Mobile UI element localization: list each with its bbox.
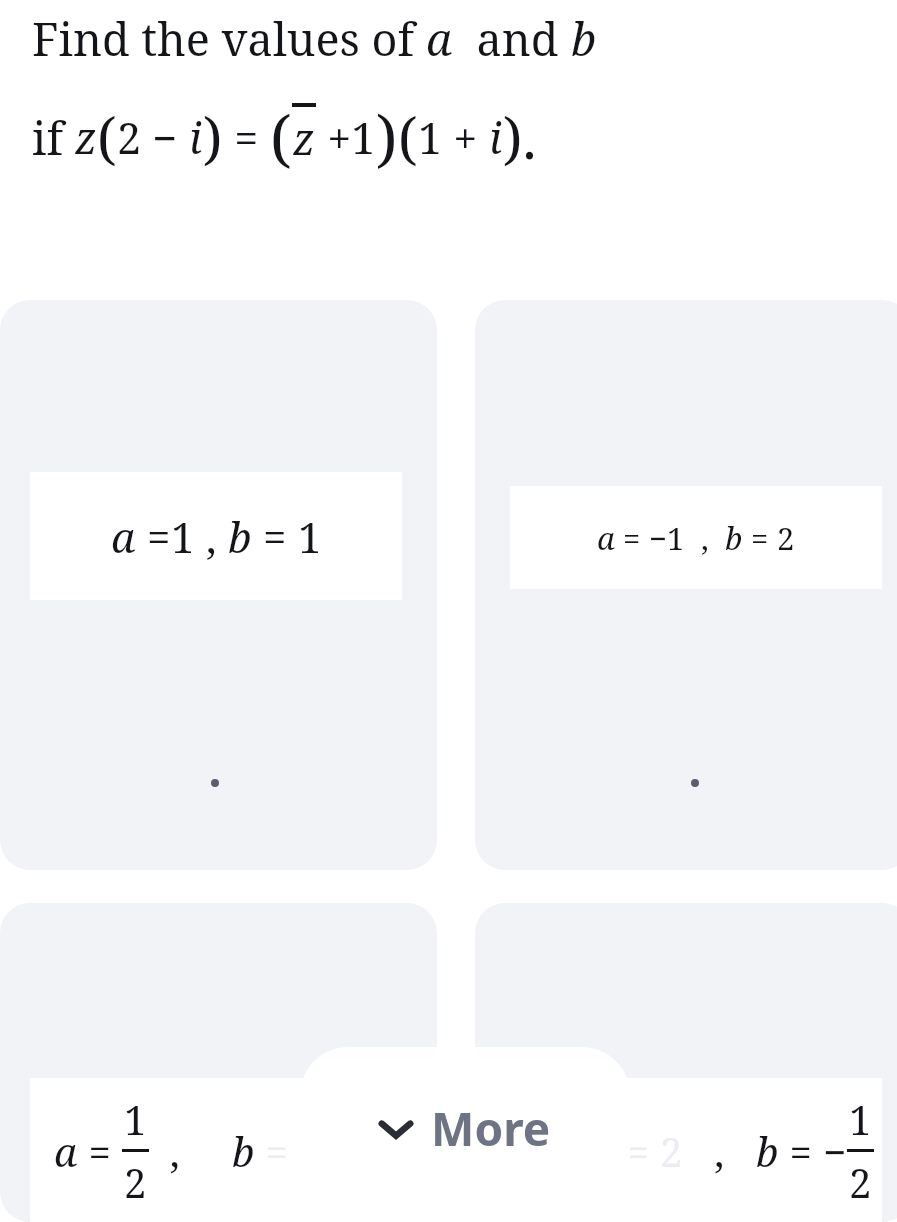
- staticText: +1: [316, 108, 376, 167]
- staticText: =: [616, 1124, 660, 1178]
- staticText: −: [823, 1124, 847, 1178]
- staticText: =: [255, 1124, 299, 1178]
- staticText: More: [431, 1097, 551, 1160]
- staticText: (: [97, 99, 117, 175]
- staticText: if: [32, 107, 75, 168]
- staticText: a: [597, 517, 615, 559]
- staticText: =: [78, 1124, 122, 1178]
- staticText: z: [293, 109, 315, 168]
- staticText: =: [223, 108, 270, 167]
- button[interactable]: [0, 300, 437, 870]
- staticText: i: [489, 108, 503, 167]
- staticText: a: [54, 1124, 78, 1178]
- staticText: a: [111, 508, 136, 565]
- staticText: 2 −: [117, 108, 189, 167]
- staticText: b: [571, 8, 597, 69]
- staticText: b: [232, 1124, 255, 1178]
- staticText: 1: [171, 508, 195, 565]
- staticText: =: [252, 508, 298, 565]
- staticText: ,: [685, 517, 725, 559]
- staticText: =: [743, 517, 777, 559]
- staticText: ,: [149, 1124, 232, 1178]
- staticText: 1 +: [418, 108, 489, 167]
- staticText: ): [203, 99, 223, 175]
- staticText: ,: [195, 508, 228, 565]
- staticText: 2: [849, 1155, 872, 1209]
- staticText: =: [136, 508, 171, 565]
- staticText: 2: [124, 1155, 147, 1209]
- staticText: 1: [124, 1092, 147, 1146]
- staticText: −1: [649, 517, 685, 559]
- staticText: =: [779, 1124, 823, 1178]
- staticText: 2: [660, 1124, 683, 1178]
- staticText: b: [725, 517, 743, 559]
- staticText: 1: [849, 1092, 872, 1146]
- staticText: b: [756, 1124, 779, 1178]
- button[interactable]: [475, 903, 897, 1222]
- staticText: a: [426, 8, 453, 69]
- button[interactable]: More: [300, 1047, 630, 1222]
- staticText: i: [189, 108, 203, 167]
- staticText: z: [75, 108, 97, 167]
- button[interactable]: [0, 903, 437, 1222]
- staticText: (: [398, 99, 418, 175]
- staticText: and: [453, 8, 571, 69]
- staticText: =: [615, 517, 649, 559]
- button[interactable]: [475, 300, 897, 870]
- staticText: (: [270, 95, 292, 179]
- staticText: b: [228, 508, 252, 565]
- staticText: Find the values of: [32, 8, 426, 69]
- staticText: 2: [777, 517, 795, 559]
- staticText: ).: [503, 99, 537, 175]
- staticText: ,: [683, 1124, 756, 1178]
- staticText: 1: [298, 508, 322, 565]
- staticText: ): [376, 95, 398, 179]
